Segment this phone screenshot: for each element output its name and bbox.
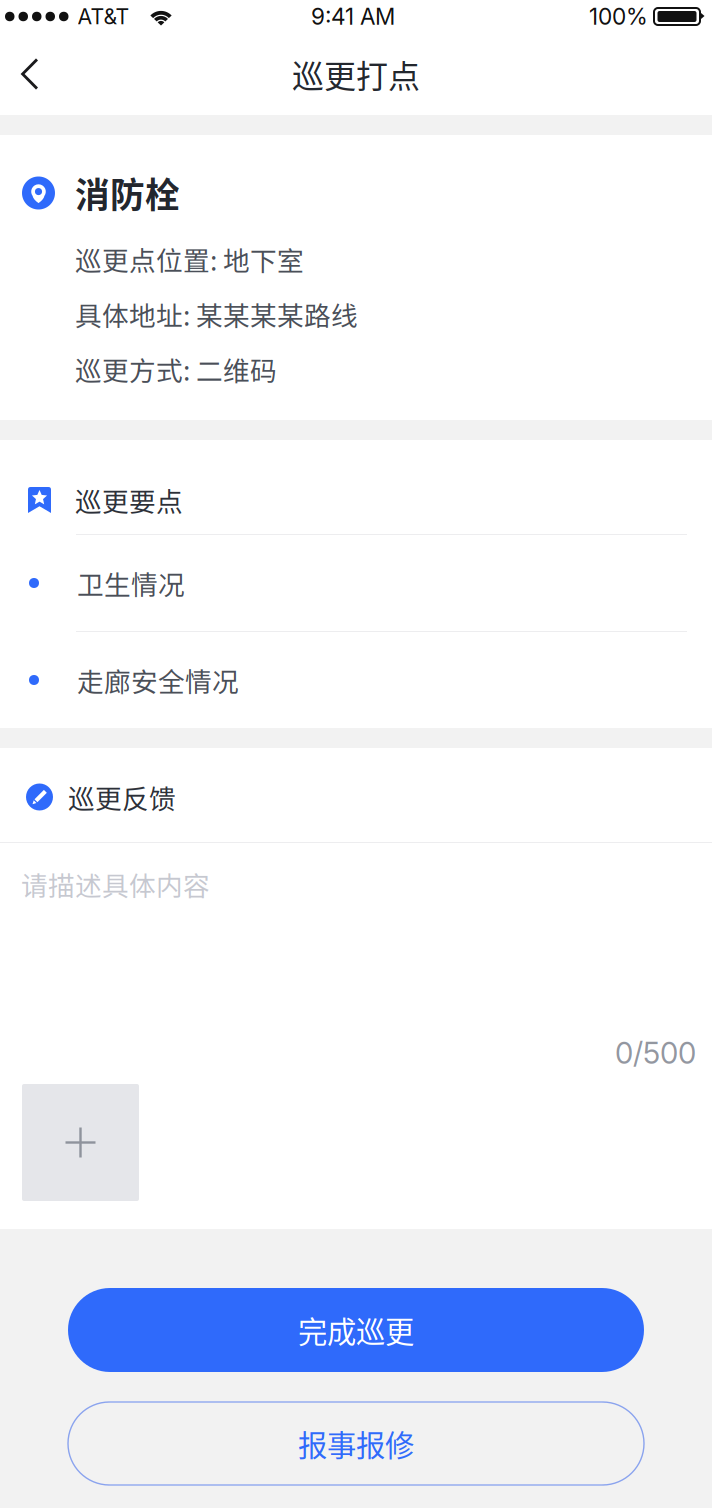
staticText: 100% bbox=[589, 3, 648, 30]
staticText: 卫生情况 bbox=[77, 564, 185, 602]
staticText: 巡更要点 bbox=[75, 481, 183, 519]
staticText: 巡更点位置: 地下室 bbox=[75, 240, 304, 278]
staticText: 消防栓 bbox=[75, 168, 180, 218]
button[interactable]: 完成巡更 bbox=[68, 1288, 644, 1372]
staticText: 报事报修 bbox=[298, 1422, 414, 1465]
staticText: 请描述具体内容 bbox=[21, 865, 210, 903]
staticText: 巡更方式: 二维码 bbox=[75, 350, 277, 388]
staticText: 9:41 AM bbox=[311, 3, 395, 30]
staticText: 完成巡更 bbox=[298, 1309, 414, 1351]
staticText: 巡更反馈 bbox=[68, 778, 176, 816]
button[interactable]: Add photo bbox=[22, 1084, 139, 1201]
staticText: 0/500 bbox=[615, 1035, 696, 1071]
button[interactable]: 报事报修 bbox=[68, 1402, 644, 1485]
button[interactable]: 卫生情况 bbox=[0, 535, 712, 631]
button[interactable]: 走廊安全情况 bbox=[0, 632, 712, 728]
staticText: 巡更打点 bbox=[292, 51, 420, 97]
staticText: 具体地址: 某某某某路线 bbox=[75, 295, 358, 333]
staticText: AT&T bbox=[77, 4, 129, 29]
staticText: 走廊安全情况 bbox=[77, 661, 239, 699]
button[interactable]: Back bbox=[0, 38, 66, 109]
